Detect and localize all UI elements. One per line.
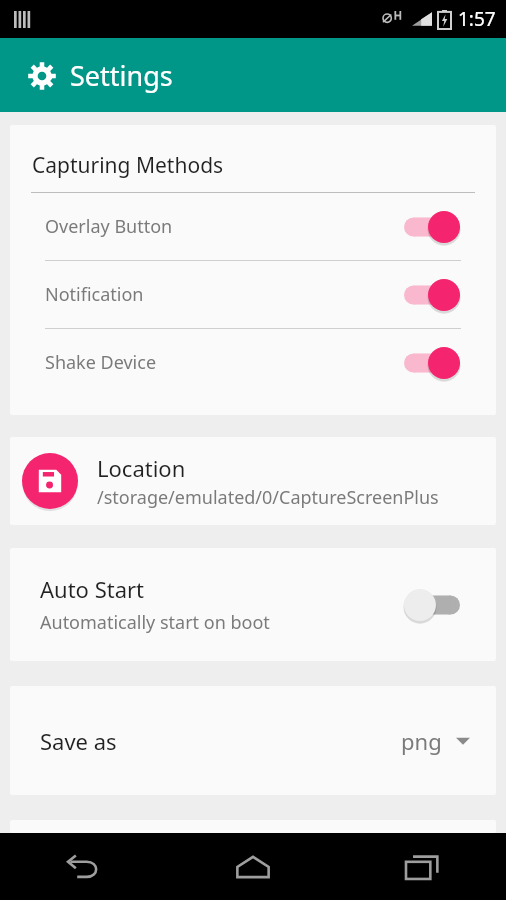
button[interactable]: Overlay Button bbox=[10, 193, 496, 260]
button[interactable]: Back bbox=[0, 833, 168, 900]
other: Toggle bbox=[404, 346, 460, 380]
other: Toggle bbox=[404, 210, 460, 244]
staticText: Shake Device bbox=[45, 350, 404, 375]
button[interactable]: Recent apps bbox=[337, 833, 506, 900]
button[interactable]: Auto Start bbox=[10, 548, 496, 661]
button[interactable]: Notification bbox=[10, 261, 496, 328]
other: Settings bbox=[28, 62, 56, 90]
other: Toggle bbox=[404, 588, 460, 622]
staticText: Capturing Methods bbox=[32, 151, 224, 180]
staticText: Auto Start bbox=[40, 574, 145, 604]
staticText: Settings bbox=[70, 57, 173, 94]
staticText: png bbox=[401, 726, 442, 756]
button[interactable]: Storage location bbox=[10, 437, 496, 525]
staticText: Save as bbox=[40, 726, 401, 756]
staticText: Location bbox=[97, 453, 186, 483]
staticText: Notification bbox=[45, 282, 404, 307]
button[interactable]: Shake Device bbox=[10, 329, 496, 396]
button[interactable]: Home bbox=[168, 833, 337, 900]
staticText: 1:57 bbox=[458, 6, 496, 32]
staticText: Overlay Button bbox=[45, 214, 404, 239]
staticText: Automatically start on boot bbox=[40, 610, 270, 635]
other: Storage location bbox=[22, 453, 78, 509]
button[interactable]: Save as bbox=[10, 686, 496, 795]
staticText: /storage/emulated/0/CaptureScreenPlus bbox=[97, 485, 439, 510]
other: Toggle bbox=[404, 278, 460, 312]
